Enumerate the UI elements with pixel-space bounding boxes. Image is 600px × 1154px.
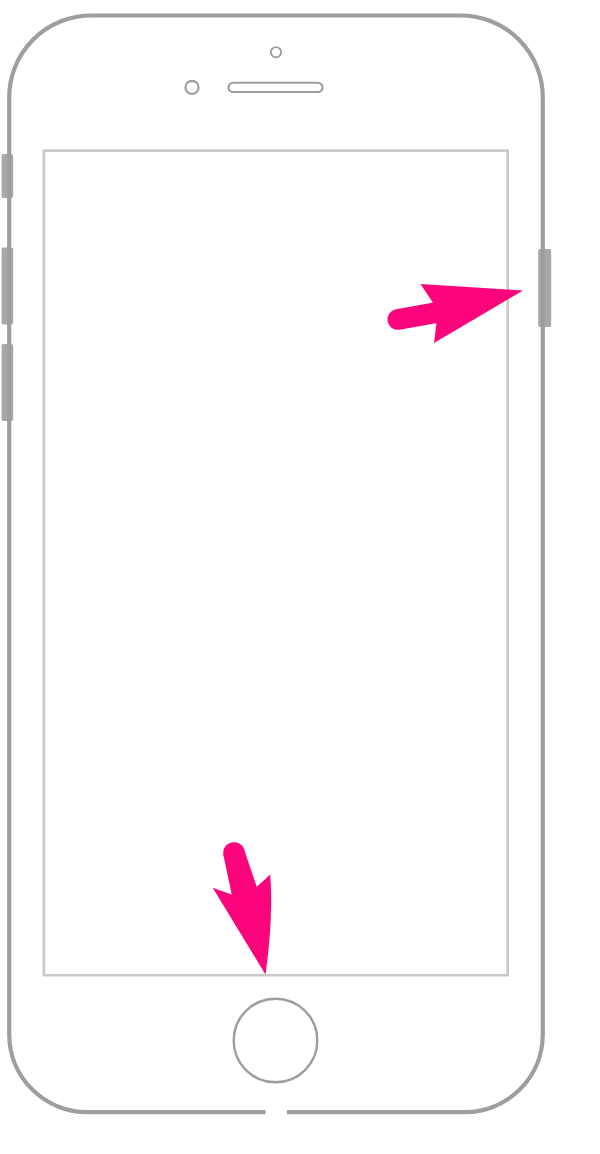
- button[interactable]: Home button: [232, 997, 319, 1084]
- button[interactable]: Ring silent switch: [0, 152, 16, 200]
- button[interactable]: Phone display: [45, 150, 509, 974]
- button[interactable]: Volume up button: [0, 245, 16, 327]
- button[interactable]: Side (power) button: [536, 247, 553, 329]
- button[interactable]: Volume down button: [0, 342, 16, 423]
